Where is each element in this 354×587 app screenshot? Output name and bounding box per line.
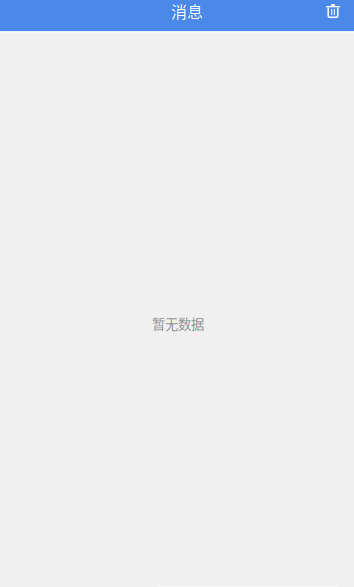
staticText: 消息 — [171, 0, 203, 23]
button[interactable]: Clear all messages — [318, 0, 348, 22]
staticText: 暂无数据 — [152, 314, 204, 333]
